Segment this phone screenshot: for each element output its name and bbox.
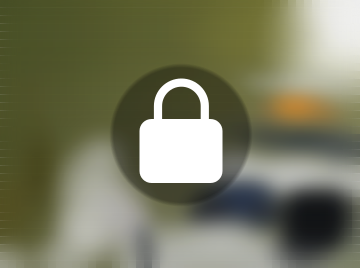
button[interactable]: Locked: [104, 58, 256, 210]
